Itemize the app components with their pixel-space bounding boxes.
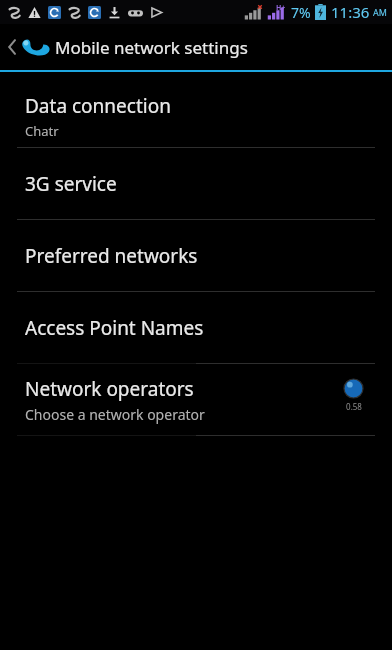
staticText: 11:36 bbox=[331, 2, 370, 22]
button[interactable]: Data connection bbox=[0, 85, 392, 147]
staticText: AM bbox=[373, 6, 387, 18]
staticText: Access Point Names bbox=[25, 315, 204, 341]
button[interactable]: Preferred networks bbox=[0, 220, 392, 291]
staticText: Choose a network operator bbox=[25, 405, 205, 424]
button[interactable]: Network operators bbox=[0, 364, 392, 435]
staticText: 0.58 bbox=[346, 401, 362, 412]
staticText: 3G service bbox=[25, 171, 117, 197]
staticText: Preferred networks bbox=[25, 243, 198, 269]
staticText: H+ bbox=[276, 3, 286, 13]
button[interactable]: Back, Mobile network settings bbox=[0, 24, 392, 70]
button[interactable]: 3G service bbox=[0, 148, 392, 219]
staticText: Chatr bbox=[25, 122, 59, 140]
staticText: Mobile network settings bbox=[55, 36, 248, 59]
staticText: Data connection bbox=[25, 93, 171, 119]
staticText: Network operators bbox=[25, 376, 194, 402]
staticText: 7% bbox=[291, 3, 311, 22]
button[interactable]: Access Point Names bbox=[0, 292, 392, 363]
